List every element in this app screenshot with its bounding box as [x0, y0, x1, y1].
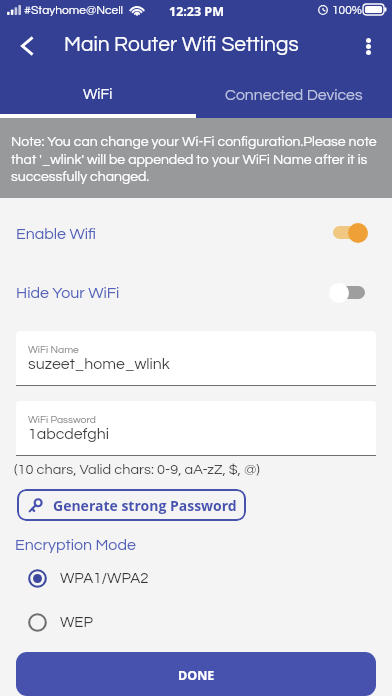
button[interactable]: More options	[349, 22, 387, 70]
staticText: (10 chars, Valid chars: 0-9, aA-zZ, $, @…	[14, 462, 260, 477]
staticText: 100%	[332, 4, 362, 16]
staticText: WiFi Name	[28, 345, 79, 356]
staticText: Connected Devices	[225, 87, 363, 103]
staticText: WEP	[60, 615, 93, 630]
staticText: 1abcdefghi	[28, 426, 110, 442]
button[interactable]: Connected Devices	[196, 70, 392, 114]
staticText: #Stayhome@Ncell	[24, 4, 124, 16]
button[interactable]: WEP	[0, 613, 392, 632]
button[interactable]: DONE	[16, 652, 376, 696]
staticText: DONE	[178, 667, 215, 684]
staticText: Enable Wifi	[16, 226, 96, 242]
button[interactable]: Generate strong Password	[17, 489, 246, 521]
button[interactable]: WiFi	[0, 70, 196, 114]
staticText: WiFi	[83, 87, 113, 102]
staticText: WiFi Password	[28, 415, 96, 426]
staticText: Generate strong Password	[53, 496, 237, 515]
staticText: suzeet_home_wlink	[28, 356, 170, 372]
staticText: WPA1/WPA2	[60, 571, 149, 586]
staticText: 12:23 PM	[169, 3, 224, 20]
button[interactable]: Hide Your WiFi	[0, 280, 392, 332]
button[interactable]: Enable Wifi	[0, 220, 392, 272]
staticText: Note: You can change your Wi-Fi configur…	[11, 135, 378, 184]
staticText: Encryption Mode	[15, 537, 136, 553]
button[interactable]: Back	[6, 22, 48, 70]
staticText: Hide Your WiFi	[16, 285, 120, 301]
button[interactable]: WPA1/WPA2	[0, 569, 392, 588]
staticText: Main Router Wifi Settings	[64, 34, 299, 56]
